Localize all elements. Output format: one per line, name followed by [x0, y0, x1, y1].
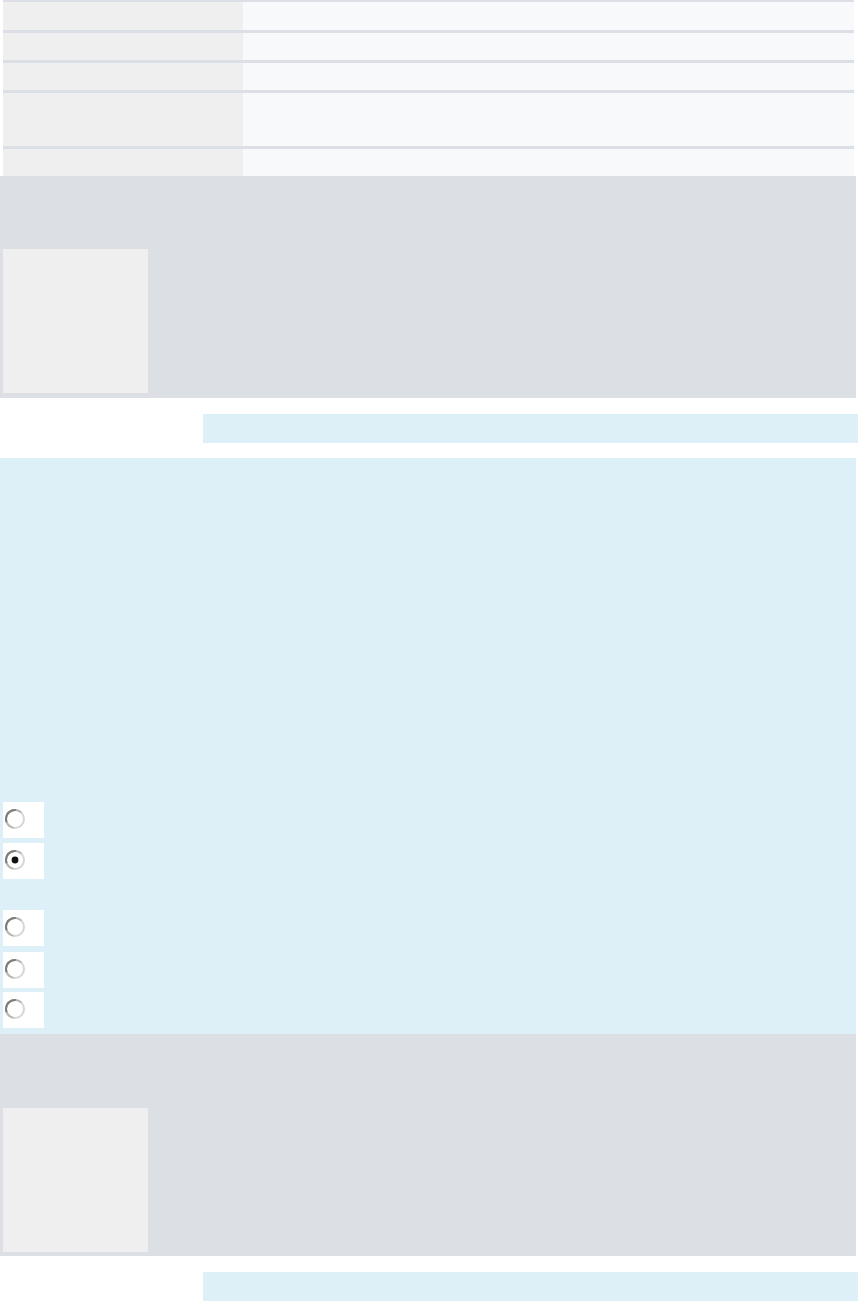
button[interactable]: Option — [3, 952, 44, 988]
button[interactable] — [3, 2, 854, 30]
button[interactable]: Option — [3, 910, 44, 946]
button[interactable] — [3, 33, 854, 60]
button[interactable]: Selected option — [3, 843, 44, 879]
button[interactable]: Option — [3, 992, 44, 1028]
button[interactable] — [3, 149, 854, 176]
button[interactable] — [3, 93, 854, 146]
button[interactable]: Option — [3, 802, 44, 838]
button[interactable] — [3, 63, 854, 90]
